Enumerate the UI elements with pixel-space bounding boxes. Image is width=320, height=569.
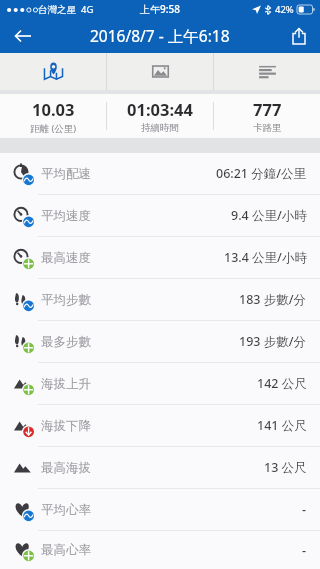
- staticText: 06:21 分鐘/公里: [216, 165, 307, 182]
- staticText: 最高心率: [41, 542, 91, 558]
- button[interactable]: 平均步數: [0, 279, 320, 321]
- staticText: 9.4 公里/小時: [231, 207, 307, 224]
- button[interactable]: 01:03:44: [107, 94, 213, 138]
- button[interactable]: 平均配速: [0, 153, 320, 195]
- staticText: 最高海拔: [41, 460, 91, 476]
- staticText: 01:03:44: [127, 98, 193, 120]
- staticText: 海拔下降: [41, 418, 91, 434]
- button[interactable]: 海拔下降: [0, 405, 320, 447]
- staticText: 台灣之星: [38, 4, 76, 16]
- staticText: 183 步數/分: [239, 291, 307, 308]
- staticText: 4G: [81, 3, 94, 16]
- staticText: 最多步數: [41, 334, 91, 350]
- button[interactable]: 777: [214, 94, 320, 138]
- staticText: 13.4 公里/小時: [224, 249, 307, 266]
- staticText: 距離 (公里): [30, 122, 77, 135]
- staticText: 777: [253, 98, 282, 120]
- staticText: 42%: [275, 3, 294, 16]
- staticText: 13 公尺: [264, 459, 307, 476]
- button[interactable]: 10.03: [0, 94, 106, 138]
- button[interactable]: 最高速度: [0, 237, 320, 279]
- button[interactable]: 最多步數: [0, 321, 320, 363]
- button[interactable]: Map: [0, 53, 106, 90]
- button[interactable]: 平均速度: [0, 195, 320, 237]
- staticText: 平均步數: [41, 292, 91, 308]
- staticText: 2016/8/7 - 上午6:18: [90, 25, 230, 46]
- staticText: 最高速度: [41, 250, 91, 266]
- button[interactable]: Photos: [107, 53, 213, 90]
- button[interactable]: 最高海拔: [0, 447, 320, 489]
- staticText: -: [302, 501, 307, 518]
- staticText: 141 公尺: [257, 417, 307, 434]
- button[interactable]: 海拔上升: [0, 363, 320, 405]
- staticText: 卡路里: [253, 122, 282, 134]
- button[interactable]: Stats: [214, 53, 320, 90]
- staticText: -: [302, 542, 307, 559]
- staticText: 平均速度: [41, 208, 91, 224]
- button[interactable]: Share: [278, 18, 320, 53]
- staticText: 193 步數/分: [239, 333, 307, 350]
- button[interactable]: 平均心率: [0, 489, 320, 531]
- staticText: 平均配速: [41, 166, 91, 182]
- staticText: 持續時間: [141, 122, 179, 134]
- button[interactable]: Back: [0, 18, 44, 53]
- button[interactable]: 最高心率: [0, 531, 320, 569]
- staticText: 10.03: [32, 98, 75, 120]
- staticText: 平均心率: [41, 502, 91, 518]
- staticText: 海拔上升: [41, 376, 91, 392]
- staticText: 142 公尺: [257, 375, 307, 392]
- staticText: 上午9:58: [140, 2, 180, 16]
